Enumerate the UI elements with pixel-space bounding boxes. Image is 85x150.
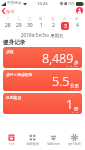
staticText: 步行＋跑步距离 — [6, 72, 33, 77]
button[interactable]: 医疗急救 — [64, 130, 85, 150]
button[interactable]: 微信 — [0, 8, 17, 14]
staticText: 28 — [5, 22, 11, 29]
button[interactable]: 步行＋跑步距离 — [3, 70, 82, 91]
button[interactable]: 健康记录 — [43, 130, 64, 150]
button[interactable]: 健康数据 — [22, 130, 43, 150]
staticText: 1 — [40, 22, 43, 29]
staticText: 健康数据 — [26, 142, 39, 146]
button[interactable]: 步数 — [3, 47, 82, 68]
staticText: 2019年5月3日 星期五 — [21, 32, 64, 38]
staticText: 8,489 — [42, 50, 74, 67]
staticText: 平均 7,231 — [63, 66, 79, 67]
staticText: 平均 4.8 — [67, 89, 79, 90]
staticText: 步 — [74, 60, 79, 66]
staticText: 今天 — [8, 142, 15, 146]
staticText: 4 — [76, 22, 79, 29]
staticText: 三 — [28, 17, 32, 21]
staticText: 微信 — [6, 9, 15, 14]
button[interactable]: 1 — [35, 21, 47, 30]
button[interactable]: 今天 — [0, 130, 22, 150]
staticText: 医疗急救 — [68, 142, 81, 146]
staticText: 健身记录 — [3, 39, 26, 46]
staticText: 3 — [64, 23, 67, 30]
staticText: 已爬楼层 — [6, 95, 22, 100]
staticText: 中国移动 — [7, 1, 22, 6]
staticText: 五 — [51, 17, 55, 21]
staticText: 平均 3 — [69, 112, 79, 113]
button[interactable]: 个人中心 — [76, 7, 83, 14]
staticText: 层 — [74, 106, 79, 112]
button[interactable]: 2 — [47, 21, 59, 30]
staticText: 二 — [17, 17, 21, 21]
staticText: 健康记录 — [47, 142, 60, 146]
button[interactable]: 4 — [71, 21, 83, 30]
staticText: 29 — [16, 22, 22, 29]
button[interactable]: 30 — [24, 21, 35, 30]
staticText: 5.5 — [52, 73, 70, 90]
button[interactable]: 28 — [2, 21, 13, 30]
staticText: 日 — [75, 17, 79, 21]
staticText: 四 — [39, 17, 43, 21]
button[interactable]: 已爬楼层 — [3, 93, 82, 114]
staticText: 一 — [6, 17, 10, 21]
staticText: 六 — [63, 17, 67, 21]
button[interactable]: 3 — [59, 21, 71, 30]
staticText: 1 — [66, 96, 74, 113]
staticText: 30 — [27, 22, 33, 29]
staticText: 步数 — [6, 49, 14, 54]
staticText: 16:24 — [37, 1, 48, 7]
button[interactable]: 29 — [13, 21, 24, 30]
staticText: 公里 — [70, 83, 79, 89]
staticText: 76% — [68, 1, 75, 6]
staticText: 2 — [52, 22, 55, 29]
